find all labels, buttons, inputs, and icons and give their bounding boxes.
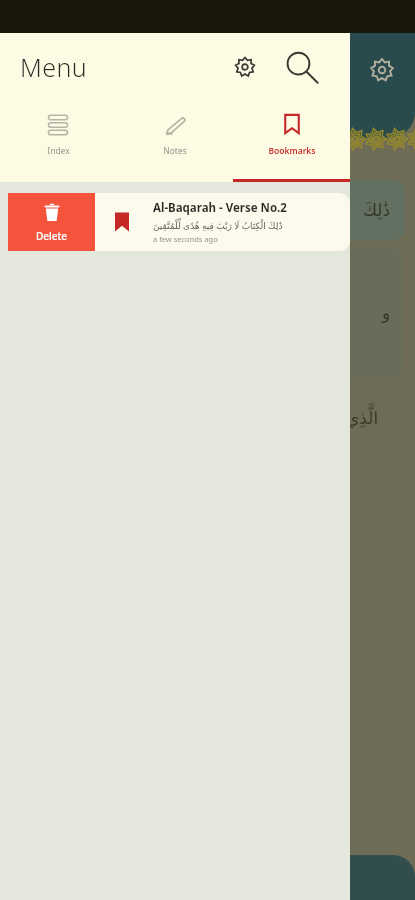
button[interactable]: Index [0, 100, 116, 182]
staticText: ذَٰلِكَ الْكِتَابُ لَا رَيْبَ فِيهِ هُدً… [153, 219, 283, 231]
button[interactable]: Settings [224, 46, 266, 88]
staticText: الَّذِي [346, 408, 379, 428]
button[interactable]: Bookmarks [233, 100, 350, 182]
button[interactable]: ذَٰلِكَ [12, 180, 405, 240]
button[interactable]: Settings [367, 55, 397, 85]
button[interactable]: Al-Baqarah - Verse No.2 [95, 193, 350, 251]
staticText: Index [47, 145, 70, 157]
button[interactable]: Delete [8, 193, 95, 251]
staticText: Menu [20, 50, 87, 84]
button[interactable]: Search [280, 46, 322, 88]
staticText: Al-Baqarah - Verse No.2 [153, 200, 287, 216]
staticText: Notes [163, 145, 187, 157]
button[interactable]: و [12, 248, 405, 378]
staticText: ذَٰلِكَ [363, 200, 391, 220]
button[interactable]: Notes [116, 100, 233, 182]
staticText: و [382, 303, 391, 323]
staticText: Delete [36, 229, 68, 243]
staticText: a few seconds ago [153, 234, 218, 244]
staticText: Bookmarks [268, 145, 316, 157]
